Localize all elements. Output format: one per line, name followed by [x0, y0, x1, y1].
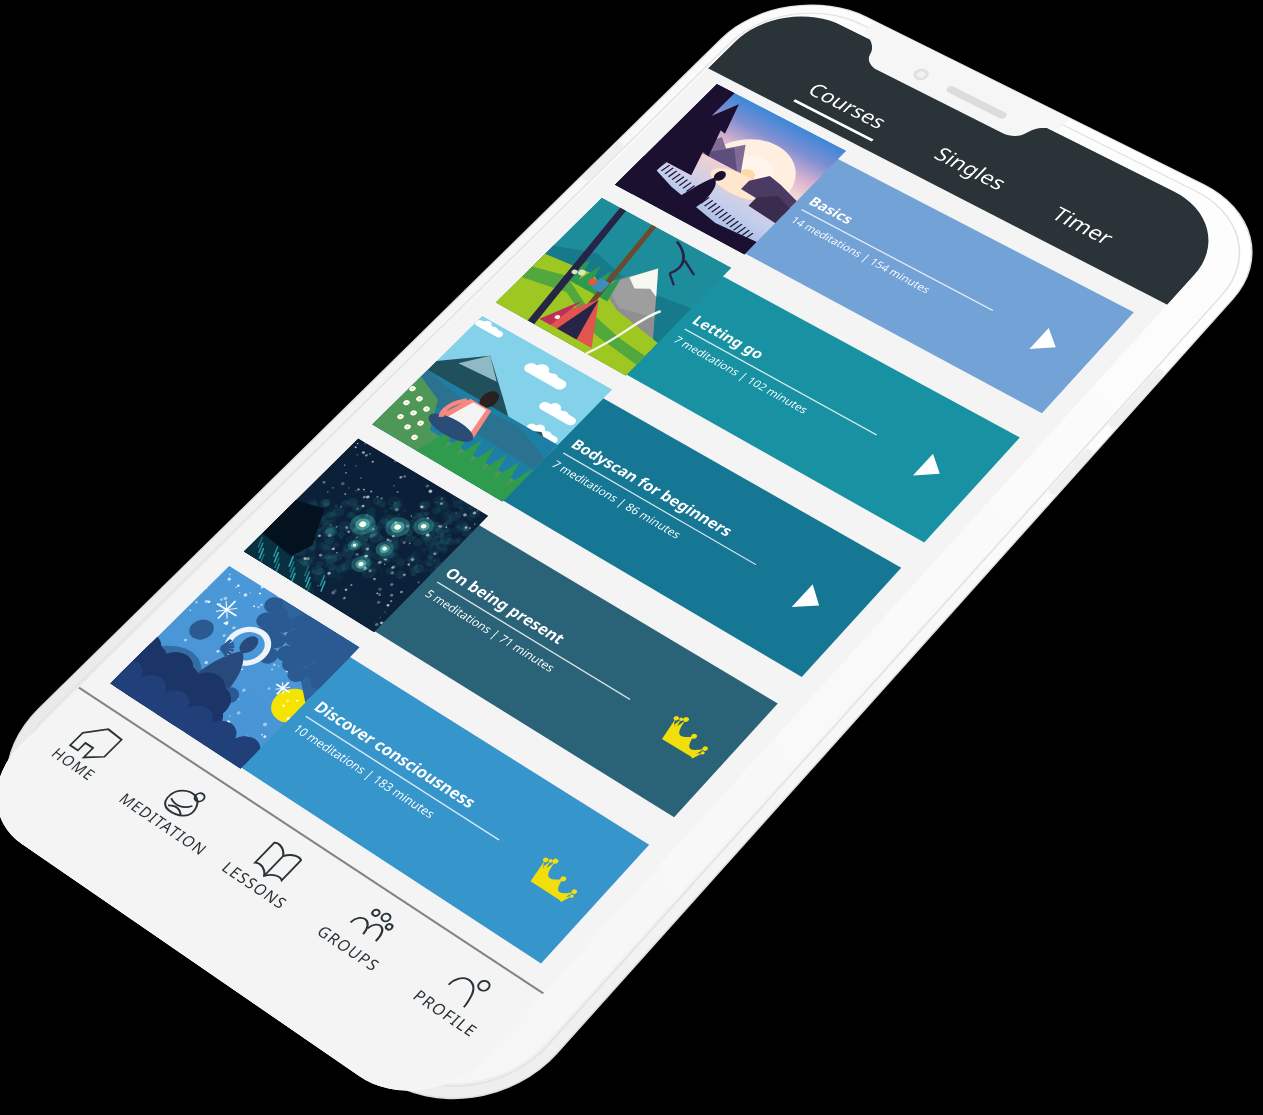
button[interactable]: On being present course — [245, 430, 770, 635]
button[interactable]: Groups — [320, 862, 455, 1007]
button[interactable]: Singles tab — [895, 78, 1025, 198]
button[interactable]: Lessons — [225, 798, 355, 943]
button[interactable]: Courses tab — [780, 18, 900, 128]
button[interactable]: Bodyscan for beginners course — [370, 310, 895, 515]
button[interactable]: Discover consciousness course — [110, 550, 650, 765]
button[interactable]: Home — [50, 665, 160, 795]
button[interactable]: Basics course — [610, 70, 1135, 270]
button[interactable]: Meditation — [128, 730, 253, 870]
button[interactable]: Letting go course — [490, 190, 1015, 390]
button[interactable]: Timer tab — [1000, 150, 1140, 280]
button[interactable]: Profile — [415, 928, 555, 1073]
